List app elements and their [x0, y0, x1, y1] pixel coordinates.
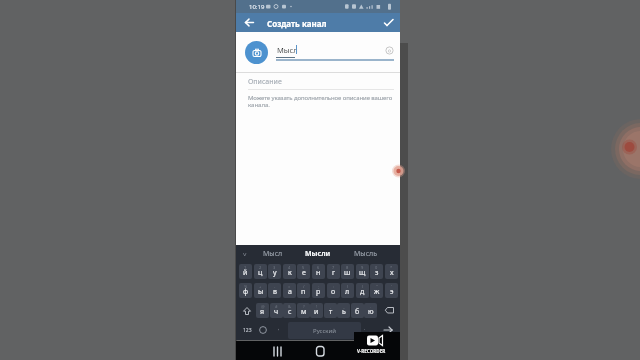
- staticText: а: [288, 287, 292, 297]
- button[interactable]: Русский: [288, 322, 361, 339]
- staticText: ф: [243, 287, 249, 297]
- button[interactable]: @: [256, 303, 269, 318]
- button[interactable]: Мысли: [302, 247, 334, 260]
- button[interactable]: Мысль: [350, 247, 382, 260]
- staticText: в: [273, 287, 277, 297]
- button[interactable]: ): [356, 283, 369, 298]
- staticText: ": [376, 284, 378, 289]
- staticText: ь: [342, 307, 346, 317]
- staticText: Мысл: [277, 45, 298, 55]
- staticText: ): [362, 284, 364, 289]
- staticText: ю: [368, 307, 374, 317]
- staticText: р: [316, 287, 321, 297]
- button[interactable]: !: [310, 303, 323, 318]
- button[interactable]: Мысл: [276, 42, 395, 62]
- staticText: *: [390, 265, 393, 270]
- button[interactable]: 9: [356, 264, 369, 279]
- button[interactable]: 1: [239, 264, 252, 279]
- staticText: #: [275, 304, 278, 309]
- button[interactable]: [380, 322, 396, 338]
- staticText: л: [345, 287, 350, 297]
- button[interactable]: *: [385, 264, 398, 279]
- staticText: V·RECORDER: [357, 348, 386, 354]
- staticText: б: [355, 307, 360, 317]
- button[interactable]: …: [351, 303, 364, 318]
- button[interactable]: .: [364, 303, 377, 318]
- button[interactable]: #: [270, 303, 283, 318]
- staticText: к: [288, 268, 292, 278]
- staticText: (: [347, 284, 349, 289]
- button[interactable]: 3: [268, 264, 281, 279]
- button[interactable]: [245, 41, 268, 64]
- staticText: 7: [332, 265, 335, 270]
- staticText: у: [273, 268, 277, 278]
- button[interactable]: Описание: [248, 75, 394, 90]
- staticText: г: [332, 268, 336, 278]
- staticText: 3: [273, 265, 276, 270]
- staticText: ᐯ: [243, 251, 247, 257]
- staticText: +: [259, 284, 262, 289]
- staticText: канала.: [248, 101, 270, 109]
- staticText: ц: [258, 268, 263, 278]
- button[interactable]: 6: [312, 264, 325, 279]
- button[interactable]: =: [283, 283, 296, 298]
- staticText: ': [391, 284, 392, 289]
- staticText: &: [288, 304, 291, 309]
- button[interactable]: &: [283, 303, 296, 318]
- staticText: е: [302, 268, 306, 278]
- staticText: э: [390, 287, 394, 297]
- button[interactable]: _: [337, 303, 350, 318]
- staticText: и: [314, 307, 319, 317]
- button[interactable]: 7: [327, 264, 340, 279]
- staticText: х: [390, 268, 394, 278]
- staticText: я: [260, 307, 265, 317]
- staticText: ,: [278, 325, 280, 332]
- staticText: _: [343, 304, 345, 309]
- staticText: щ: [359, 268, 366, 278]
- button[interactable]: ?: [297, 303, 310, 318]
- button[interactable]: 5: [297, 264, 310, 279]
- staticText: @: [261, 304, 265, 309]
- staticText: ,: [330, 304, 332, 309]
- staticText: 5: [302, 265, 305, 270]
- button[interactable]: 8: [341, 264, 354, 279]
- button[interactable]: Мысл: [258, 247, 288, 260]
- staticText: Создать канал: [267, 18, 327, 29]
- staticText: ;: [318, 284, 320, 289]
- staticText: п: [301, 287, 306, 297]
- button[interactable]: 4: [283, 264, 296, 279]
- button[interactable]: 2: [254, 264, 267, 279]
- button[interactable]: 0: [370, 264, 383, 279]
- staticText: 0: [375, 265, 378, 270]
- staticText: д: [360, 287, 365, 297]
- button[interactable]: (: [341, 283, 354, 298]
- button[interactable]: -: [268, 283, 281, 298]
- staticText: о: [331, 287, 336, 297]
- button[interactable]: :: [327, 283, 340, 298]
- button[interactable]: 123: [239, 322, 256, 338]
- staticText: Русский: [313, 327, 336, 335]
- button[interactable]: [239, 303, 254, 318]
- staticText: !: [316, 304, 318, 309]
- button[interactable]: [236, 13, 260, 32]
- button[interactable]: ': [385, 283, 398, 298]
- button[interactable]: ;: [312, 283, 325, 298]
- button[interactable]: [381, 303, 397, 318]
- staticText: 4: [288, 265, 291, 270]
- staticText: ?: [303, 304, 305, 309]
- button[interactable]: [376, 13, 400, 32]
- staticText: Мысль: [354, 249, 378, 259]
- button[interactable]: ": [370, 283, 383, 298]
- staticText: :: [333, 284, 335, 289]
- button[interactable]: [270, 341, 286, 360]
- button[interactable]: %: [239, 283, 252, 298]
- button[interactable]: ,: [324, 303, 337, 318]
- staticText: й: [243, 268, 248, 278]
- staticText: Мысл: [263, 249, 283, 259]
- button[interactable]: +: [254, 283, 267, 298]
- button[interactable]: [312, 341, 328, 360]
- button[interactable]: /: [297, 283, 310, 298]
- staticText: .: [370, 304, 372, 309]
- staticText: 9: [361, 265, 364, 270]
- staticText: з: [375, 268, 379, 278]
